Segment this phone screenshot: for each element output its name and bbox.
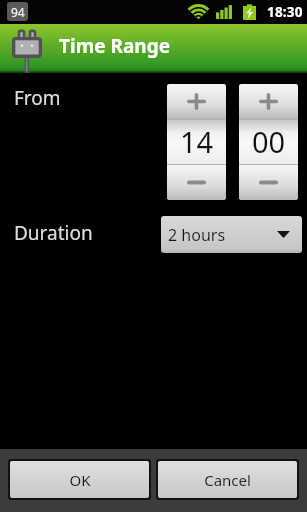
staticText: Time Range (59, 33, 170, 59)
staticText: Cancel (204, 470, 251, 490)
button[interactable]: OK (10, 461, 149, 498)
staticText: 2 hours (168, 224, 226, 246)
staticText: From (14, 85, 61, 111)
button[interactable]: Decrease (167, 165, 226, 200)
button[interactable]: Increase (239, 84, 298, 119)
staticText: OK (69, 470, 91, 490)
button[interactable]: Decrease (239, 165, 298, 200)
button[interactable]: Increase (167, 84, 226, 119)
staticText: 94 (11, 4, 25, 20)
staticText: 18:30 (267, 3, 303, 21)
button[interactable]: Cancel (158, 461, 297, 498)
button[interactable]: 2 hours (161, 216, 302, 253)
staticText: Duration (14, 220, 93, 246)
staticText: 00 (252, 122, 286, 161)
staticText: 14 (180, 122, 214, 161)
